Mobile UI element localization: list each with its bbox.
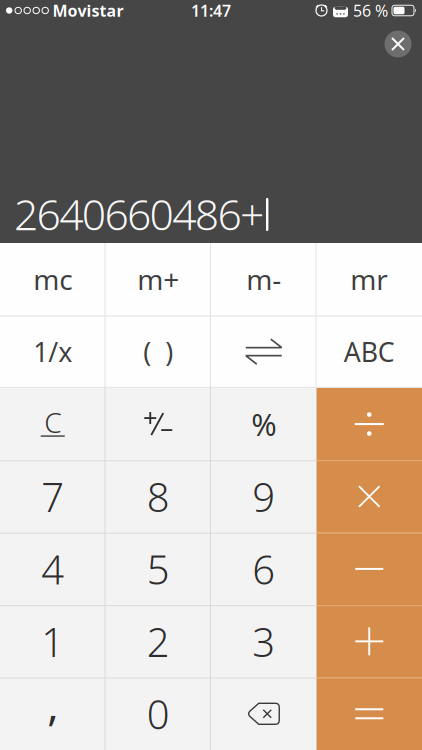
button[interactable]: 9 (211, 460, 316, 533)
staticText: 3 (252, 615, 275, 668)
button[interactable]: , (0, 678, 105, 750)
button[interactable]: 8 (105, 460, 211, 533)
button[interactable]: 0 (105, 678, 211, 750)
staticText: 8 (147, 470, 170, 523)
button[interactable]: Add (316, 605, 422, 677)
staticText: mc (33, 261, 72, 298)
staticText: ABC (344, 334, 395, 369)
button[interactable]: 1/x (0, 315, 105, 388)
button[interactable]: % (211, 388, 316, 460)
button[interactable]: m- (211, 243, 316, 315)
staticText: 6 (252, 542, 275, 595)
staticText: 1/x (33, 334, 72, 369)
staticText: m+ (137, 261, 179, 298)
button[interactable]: m+ (105, 243, 211, 315)
staticText: 7 (41, 470, 64, 523)
button[interactable]: 3 (211, 605, 316, 677)
button[interactable]: 6 (211, 533, 316, 605)
staticText: 5 (147, 542, 170, 595)
button[interactable]: mr (316, 243, 422, 315)
button[interactable]: Close (384, 30, 411, 57)
button[interactable]: Delete (211, 678, 316, 750)
staticText: ( ) (143, 334, 173, 369)
button[interactable]: 5 (105, 533, 211, 605)
staticText: 0 (147, 687, 170, 740)
staticText: % (251, 404, 276, 444)
staticText: 2640660486+ (14, 185, 264, 242)
button[interactable]: mc (0, 243, 105, 315)
button[interactable]: ( ) (105, 315, 211, 388)
staticText: 4 (41, 542, 64, 595)
button[interactable]: 4 (0, 533, 105, 605)
button[interactable]: 2 (105, 605, 211, 677)
button[interactable]: Swap operands (211, 315, 316, 388)
staticText: , (47, 676, 58, 733)
button[interactable]: C (0, 388, 105, 460)
staticText: 2 (147, 615, 170, 668)
staticText: C (44, 403, 61, 441)
button[interactable]: 1 (0, 605, 105, 677)
staticText: 9 (252, 470, 275, 523)
button[interactable]: Equals (316, 678, 422, 750)
button[interactable]: ABC (316, 315, 422, 388)
button[interactable]: Multiply (316, 460, 422, 533)
staticText: 1 (41, 615, 64, 668)
button[interactable]: Subtract (316, 533, 422, 605)
staticText: m- (246, 261, 281, 298)
button[interactable]: 7 (0, 460, 105, 533)
staticText: 56 % (353, 0, 388, 21)
button[interactable]: Toggle sign (105, 388, 211, 460)
staticText: Movistar (52, 0, 123, 21)
staticText: mr (350, 261, 388, 298)
button[interactable]: Divide (316, 388, 422, 460)
staticText: 11:47 (191, 0, 231, 21)
